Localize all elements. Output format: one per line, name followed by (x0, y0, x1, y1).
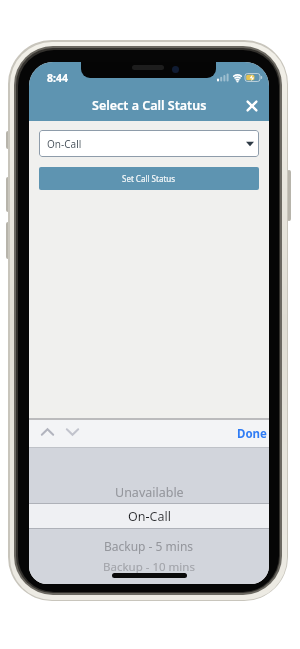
button[interactable] (241, 95, 262, 116)
staticText: Set Call Status (122, 173, 176, 184)
button[interactable]: On-Call (39, 130, 259, 157)
staticText: Backup - 10 mins (103, 559, 195, 575)
staticText: 8:44 (47, 71, 68, 85)
button[interactable]: On-Call (29, 506, 269, 526)
staticText: On-Call (128, 508, 171, 525)
button[interactable]: Select a Call Status (29, 95, 269, 115)
button[interactable]: Set Call Status (39, 167, 259, 190)
staticText: Select a Call Status (92, 97, 207, 114)
button[interactable]: Unavailable (29, 482, 269, 502)
button[interactable]: Backup - 10 mins (29, 558, 269, 576)
button[interactable]: Backup - 5 mins (29, 536, 269, 556)
button[interactable] (41, 428, 54, 436)
button[interactable]: Done (234, 425, 269, 442)
button[interactable] (66, 428, 79, 436)
staticText: Backup - 5 mins (104, 538, 194, 554)
staticText: Done (237, 426, 267, 442)
staticText: On-Call (47, 137, 82, 151)
staticText: Unavailable (115, 484, 184, 501)
